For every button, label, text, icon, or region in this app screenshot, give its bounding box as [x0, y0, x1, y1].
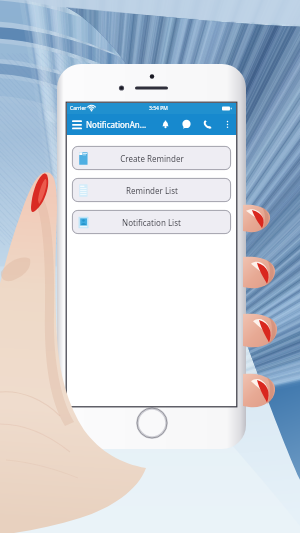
staticText: Notification List — [122, 217, 181, 228]
button[interactable]: Open navigation menu — [67, 114, 87, 135]
button[interactable]: Notification List — [72, 210, 231, 234]
button[interactable]: Create Reminder — [72, 146, 231, 170]
button[interactable]: More options — [218, 114, 236, 135]
button[interactable]: Messages — [176, 114, 197, 135]
button[interactable]: Call — [197, 114, 218, 135]
staticText: Create Reminder — [120, 153, 184, 164]
button[interactable]: Notifications — [155, 114, 176, 135]
staticText: NotificationAn... — [86, 119, 147, 130]
button[interactable]: Reminder List — [72, 178, 231, 202]
staticText: 3:54 PM — [149, 105, 168, 112]
staticText: Reminder List — [126, 185, 178, 196]
staticText: Carrier — [70, 105, 87, 112]
